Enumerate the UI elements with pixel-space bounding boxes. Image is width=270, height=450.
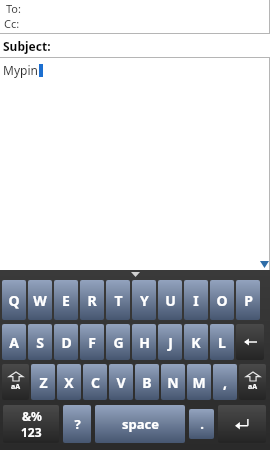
button[interactable]: K: [184, 324, 208, 360]
button[interactable]: M: [187, 364, 211, 400]
button[interactable]: W: [28, 280, 52, 320]
staticText: A: [9, 333, 19, 352]
button[interactable]: V: [109, 364, 133, 400]
button[interactable]: X: [57, 364, 81, 400]
staticText: K: [191, 333, 201, 352]
button[interactable]: T: [106, 280, 130, 320]
staticText: F: [88, 333, 96, 352]
staticText: ,: [223, 373, 227, 392]
staticText: U: [165, 291, 176, 310]
button[interactable]: &%: [3, 405, 59, 443]
staticText: ?: [74, 415, 81, 433]
button[interactable]: J: [158, 324, 182, 360]
button[interactable]: U: [158, 280, 182, 320]
button[interactable]: space: [95, 405, 185, 443]
staticText: .: [200, 415, 204, 433]
button[interactable]: F: [80, 324, 104, 360]
staticText: I: [193, 291, 199, 310]
staticText: M: [192, 373, 206, 392]
staticText: Q: [8, 291, 20, 310]
button[interactable]: I: [184, 280, 208, 320]
button[interactable]: N: [161, 364, 185, 400]
staticText: To:: [6, 1, 21, 16]
button[interactable]: Subject:: [0, 34, 270, 57]
staticText: Cc:: [4, 16, 20, 31]
button[interactable]: Scroll down: [259, 259, 269, 269]
button[interactable]: Q: [2, 280, 26, 320]
staticText: Mypin: [3, 62, 38, 78]
button[interactable]: P: [236, 280, 260, 320]
staticText: aA: [11, 382, 21, 392]
button[interactable]: ,: [213, 364, 237, 400]
button[interactable]: Z: [31, 364, 55, 400]
staticText: S: [36, 333, 44, 352]
staticText: Y: [140, 291, 149, 310]
button[interactable]: Mypin: [0, 58, 270, 270]
staticText: H: [139, 333, 150, 352]
button[interactable]: H: [132, 324, 156, 360]
staticText: W: [33, 291, 47, 310]
staticText: G: [113, 333, 124, 352]
staticText: V: [116, 373, 126, 392]
staticText: N: [167, 373, 179, 392]
button[interactable]: Y: [132, 280, 156, 320]
staticText: Z: [39, 373, 48, 392]
button[interactable]: Cc:: [3, 16, 270, 31]
button[interactable]: E: [54, 280, 78, 320]
staticText: B: [142, 373, 152, 392]
staticText: X: [64, 373, 74, 392]
staticText: P: [244, 291, 253, 310]
button[interactable]: .: [189, 409, 214, 439]
staticText: C: [91, 373, 100, 392]
staticText: Subject:: [3, 38, 51, 54]
button[interactable]: Shift: [239, 364, 266, 400]
button[interactable]: O: [210, 280, 234, 320]
staticText: E: [62, 291, 70, 310]
button[interactable]: Enter: [218, 405, 266, 443]
button[interactable]: A: [2, 324, 26, 360]
staticText: O: [216, 291, 228, 310]
button[interactable]: Shift: [2, 364, 29, 400]
button[interactable]: R: [80, 280, 104, 320]
staticText: space: [122, 415, 159, 433]
button[interactable]: L: [210, 324, 234, 360]
staticText: L: [218, 333, 226, 352]
staticText: R: [87, 291, 97, 310]
button[interactable]: C: [83, 364, 107, 400]
button[interactable]: Backspace: [236, 324, 264, 360]
button[interactable]: S: [28, 324, 52, 360]
staticText: J: [168, 333, 173, 352]
button[interactable]: To:: [3, 1, 270, 16]
staticText: D: [61, 333, 72, 352]
staticText: &%: [22, 408, 42, 424]
button[interactable]: G: [106, 324, 130, 360]
staticText: aA: [248, 382, 258, 392]
button[interactable]: B: [135, 364, 159, 400]
staticText: T: [114, 291, 123, 310]
button[interactable]: D: [54, 324, 78, 360]
staticText: 123: [21, 424, 42, 440]
button[interactable]: ?: [63, 405, 91, 443]
